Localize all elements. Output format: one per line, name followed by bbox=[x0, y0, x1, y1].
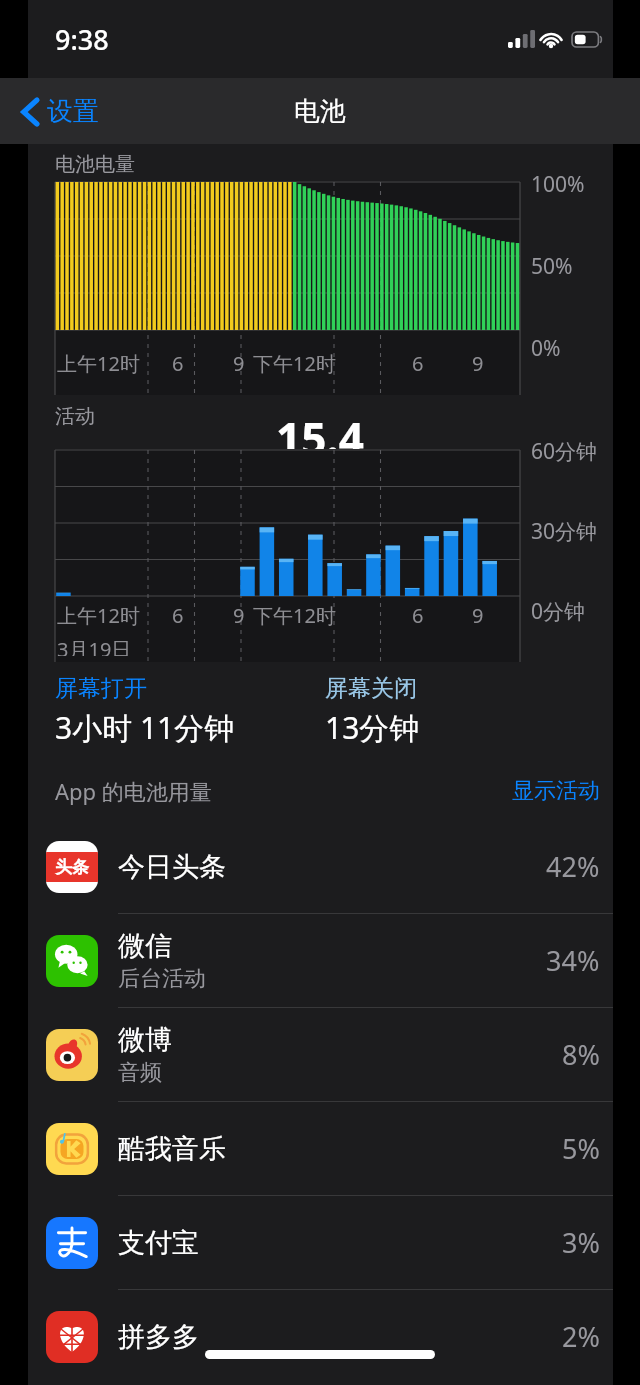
staticText: 今日头条 bbox=[118, 850, 226, 884]
staticText: 15.4 bbox=[0, 408, 640, 468]
button[interactable]: 拼多多 bbox=[0, 1290, 640, 1383]
staticText: 微信 bbox=[118, 929, 172, 963]
staticText: 34% bbox=[546, 942, 600, 979]
staticText: 酷我音乐 bbox=[118, 1132, 226, 1166]
staticText: 9 bbox=[472, 602, 484, 629]
button[interactable]: 微博 bbox=[0, 1008, 640, 1101]
staticText: 设置 bbox=[47, 95, 99, 128]
staticText: 拼多多 bbox=[118, 1320, 199, 1354]
staticText: 3% bbox=[562, 1224, 600, 1261]
staticText: 5% bbox=[562, 1130, 600, 1167]
staticText: 头条 bbox=[55, 857, 89, 878]
button[interactable]: 微信 bbox=[0, 914, 640, 1007]
staticText: 30分钟 bbox=[531, 517, 598, 546]
staticText: 后台活动 bbox=[118, 965, 206, 993]
staticText: 活动 bbox=[55, 404, 95, 429]
staticText: 2% bbox=[562, 1318, 600, 1355]
staticText: 屏幕打开 bbox=[55, 674, 147, 703]
staticText: 上午12时 bbox=[57, 350, 140, 377]
button[interactable]: 头条 bbox=[0, 820, 640, 913]
staticText: 6 bbox=[172, 350, 184, 377]
button[interactable]: 设置 bbox=[14, 89, 107, 134]
staticText: 显示活动 bbox=[512, 777, 600, 805]
staticText: 音频 bbox=[118, 1059, 162, 1087]
staticText: 电池 bbox=[294, 95, 346, 128]
staticText: 8% bbox=[562, 1036, 600, 1073]
staticText: 6 bbox=[412, 350, 424, 377]
staticText: 100% bbox=[531, 170, 585, 199]
staticText: 9 bbox=[472, 350, 484, 377]
staticText: 下午12时 bbox=[253, 350, 336, 377]
staticText: 0分钟 bbox=[531, 597, 586, 626]
staticText: 电池电量 bbox=[55, 152, 135, 177]
staticText: 支付宝 bbox=[118, 1226, 199, 1260]
staticText: 13分钟 bbox=[325, 707, 420, 748]
button[interactable]: 显示活动 bbox=[512, 777, 600, 805]
staticText: 9 bbox=[233, 602, 245, 629]
staticText: 60分钟 bbox=[531, 437, 598, 466]
staticText: 6 bbox=[412, 602, 424, 629]
staticText: 0% bbox=[531, 334, 561, 363]
staticText: 3小时 11分钟 bbox=[55, 707, 235, 748]
staticText: 42% bbox=[546, 848, 600, 885]
button[interactable]: 支付宝 bbox=[0, 1196, 640, 1289]
staticText: 9 bbox=[233, 350, 245, 377]
staticText: 屏幕关闭 bbox=[325, 674, 417, 703]
staticText: 50% bbox=[531, 252, 573, 281]
staticText: 微博 bbox=[118, 1023, 172, 1057]
staticText: 6 bbox=[172, 602, 184, 629]
button[interactable]: 酷我音乐 bbox=[0, 1102, 640, 1195]
staticText: 上午12时 bbox=[57, 602, 140, 629]
staticText: App 的电池用量 bbox=[55, 776, 212, 806]
staticText: 9:38 bbox=[55, 21, 109, 58]
staticText: 3月19日 bbox=[57, 636, 132, 656]
staticText: 下午12时 bbox=[253, 602, 336, 629]
